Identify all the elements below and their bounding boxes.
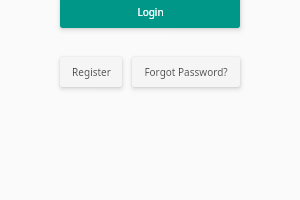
button[interactable]: Forgot Password? — [132, 57, 240, 87]
button[interactable]: Register — [60, 57, 122, 87]
staticText: Login — [137, 5, 164, 19]
button[interactable]: Login — [60, 0, 240, 28]
staticText: Forgot Password? — [144, 65, 228, 79]
staticText: Register — [72, 65, 111, 79]
